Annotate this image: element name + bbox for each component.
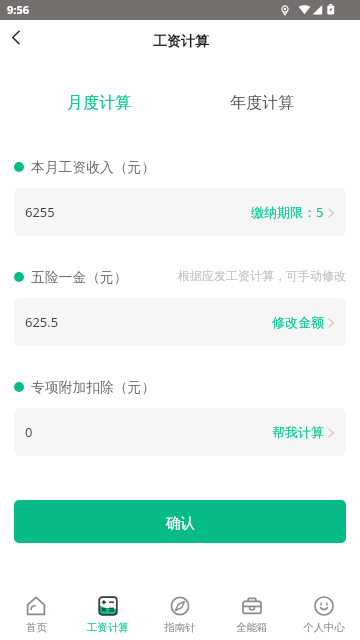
staticText: 指南针	[164, 621, 196, 634]
button[interactable]: 首页	[0, 590, 72, 640]
staticText: 9:56	[7, 2, 29, 17]
staticText: 工资计算	[153, 33, 209, 51]
staticText: 个人中心	[303, 621, 345, 634]
button[interactable]: 个人中心	[288, 590, 360, 640]
button[interactable]: 指南针	[144, 590, 216, 640]
staticText: 修改金额	[272, 314, 324, 330]
button[interactable]: 月度计算	[17, 55, 180, 150]
staticText: 确认	[166, 514, 195, 532]
staticText: 月度计算	[67, 93, 131, 113]
staticText: 625.5	[25, 313, 59, 331]
staticText: 帮我计算	[272, 424, 324, 440]
staticText: 0	[25, 423, 33, 441]
button[interactable]: 全能箱	[216, 590, 288, 640]
staticText: 五险一金（元）	[31, 269, 128, 286]
button[interactable]: Back	[0, 20, 34, 55]
staticText: 本月工资收入（元）	[31, 159, 156, 176]
button[interactable]: 6255	[14, 188, 346, 236]
button[interactable]: 确认	[14, 500, 346, 543]
button[interactable]: 年度计算	[180, 55, 343, 150]
staticText: 缴纳期限：5	[251, 203, 324, 221]
staticText: 根据应发工资计算，可手动修改	[178, 268, 346, 283]
staticText: 工资计算	[87, 621, 129, 634]
staticText: 全能箱	[236, 621, 268, 634]
staticText: 6255	[25, 203, 55, 221]
staticText: 年度计算	[230, 93, 294, 113]
staticText: 首页	[26, 621, 47, 634]
button[interactable]: 0	[14, 408, 346, 456]
button[interactable]: 625.5	[14, 298, 346, 346]
button[interactable]: 工资计算	[72, 590, 144, 640]
staticText: 专项附加扣除（元）	[31, 379, 156, 396]
